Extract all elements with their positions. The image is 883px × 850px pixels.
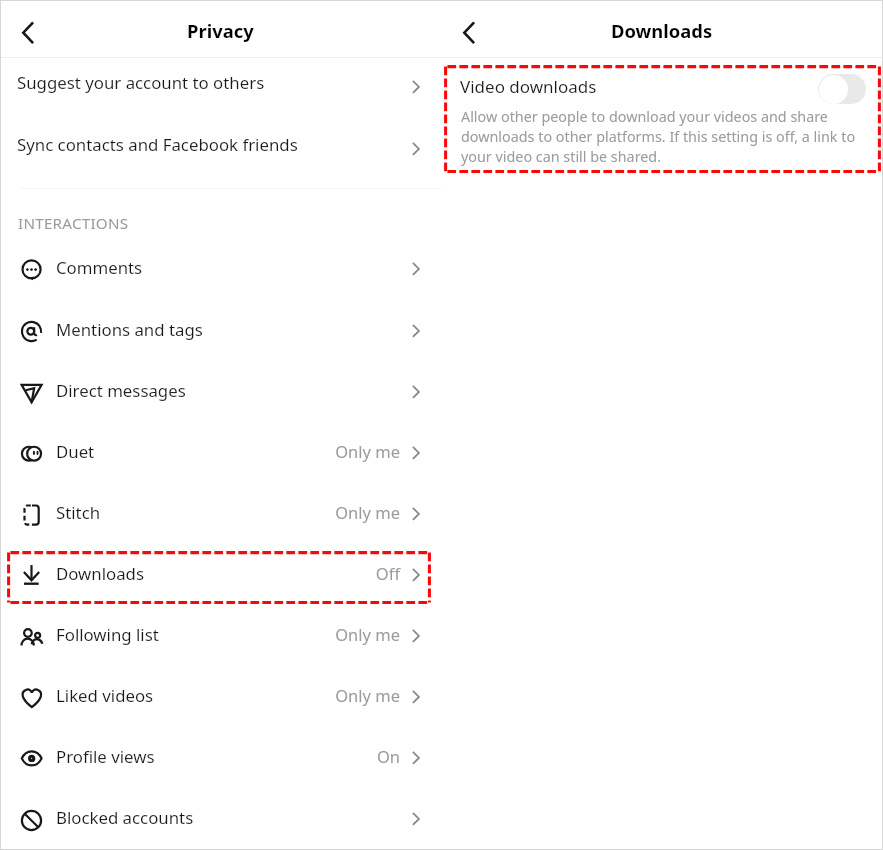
button[interactable]: Video downloads: [442, 58, 883, 176]
staticText: Following list: [56, 623, 159, 646]
button[interactable]: Profile views: [1, 728, 442, 789]
button[interactable]: Sync contacts and Facebook friends: [1, 116, 442, 177]
button[interactable]: Duet: [1, 423, 442, 484]
staticText: Video downloads: [460, 75, 597, 98]
button[interactable]: Back: [7, 12, 49, 54]
staticText: Sync contacts and Facebook friends: [17, 133, 298, 156]
staticText: Allow other people to download your vide…: [461, 107, 861, 167]
staticText: Comments: [56, 256, 143, 279]
button[interactable]: Suggest your account to others: [1, 54, 442, 115]
button[interactable]: Downloads: [1, 545, 442, 606]
staticText: Privacy: [187, 18, 254, 43]
staticText: Only me: [281, 440, 400, 462]
button[interactable]: Video downloads toggle: [818, 74, 866, 104]
staticText: Only me: [281, 623, 400, 645]
staticText: Suggest your account to others: [17, 71, 265, 94]
staticText: Blocked accounts: [56, 806, 194, 829]
staticText: Direct messages: [56, 379, 186, 402]
staticText: Downloads: [611, 18, 713, 43]
button[interactable]: Back: [448, 12, 490, 54]
staticText: Liked videos: [56, 684, 154, 707]
staticText: Duet: [56, 440, 95, 463]
staticText: Off: [281, 562, 400, 584]
staticText: Stitch: [56, 501, 101, 524]
button[interactable]: Stitch: [1, 484, 442, 545]
staticText: Only me: [281, 684, 400, 706]
button[interactable]: Direct messages: [1, 362, 442, 423]
staticText: Only me: [281, 501, 400, 523]
staticText: On: [281, 745, 400, 767]
button[interactable]: Comments: [1, 239, 442, 300]
button[interactable]: Following list: [1, 606, 442, 667]
button[interactable]: Mentions and tags: [1, 301, 442, 362]
button[interactable]: Blocked accounts: [1, 789, 442, 850]
button[interactable]: Liked videos: [1, 667, 442, 728]
staticText: Downloads: [56, 562, 144, 585]
staticText: Profile views: [56, 745, 155, 768]
staticText: Mentions and tags: [56, 318, 203, 341]
staticText: INTERACTIONS: [18, 213, 129, 234]
